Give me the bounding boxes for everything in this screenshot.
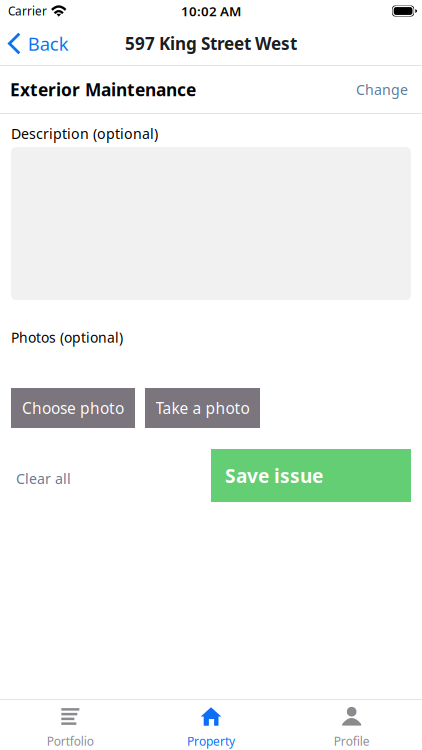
- staticText: Save issue: [225, 462, 323, 488]
- staticText: Profile: [334, 733, 370, 749]
- button[interactable]: Choose photo: [11, 388, 135, 428]
- staticText: Exterior Maintenance: [10, 78, 196, 101]
- button[interactable]: Clear all: [11, 454, 71, 497]
- button[interactable]: Profile: [281, 700, 422, 750]
- staticText: Clear all: [16, 469, 71, 488]
- button[interactable]: Back: [0, 22, 77, 65]
- button[interactable]: Property: [141, 700, 281, 750]
- staticText: 597 King Street West: [125, 32, 297, 55]
- staticText: Take a photo: [155, 397, 249, 419]
- staticText: Carrier: [8, 3, 47, 19]
- staticText: Description (optional): [11, 124, 158, 143]
- staticText: Back: [28, 31, 69, 56]
- button[interactable]: Portfolio: [0, 700, 141, 750]
- staticText: Choose photo: [22, 397, 124, 419]
- staticText: Property: [187, 733, 235, 749]
- staticText: Change: [356, 80, 408, 99]
- button[interactable]: Change: [344, 70, 408, 109]
- button[interactable]: Take a photo: [145, 388, 260, 428]
- button[interactable]: Save issue: [211, 449, 411, 502]
- staticText: Portfolio: [47, 733, 94, 749]
- staticText: Photos (optional): [11, 328, 123, 347]
- staticText: 10:02 AM: [181, 2, 241, 20]
